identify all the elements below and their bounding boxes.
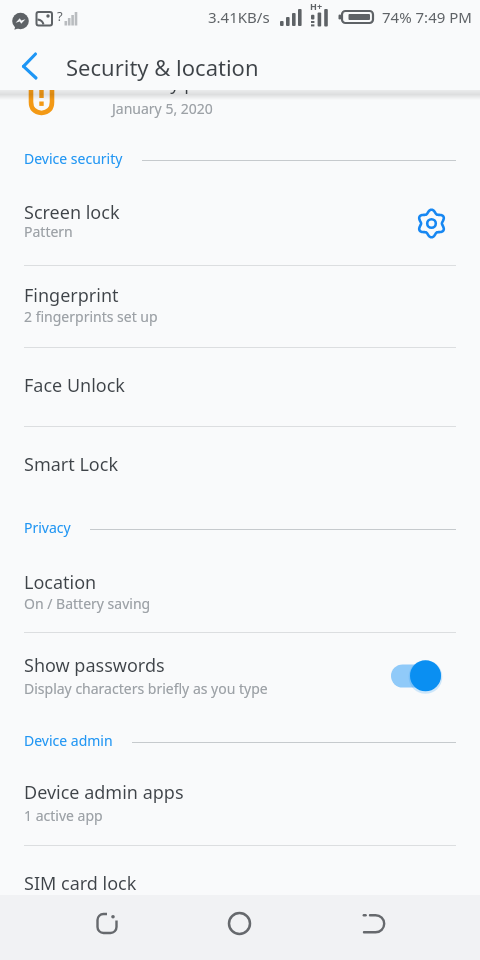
button[interactable] [0, 633, 480, 711]
staticText: Show passwords [24, 653, 165, 678]
staticText: Location [24, 570, 97, 595]
button[interactable] [0, 427, 480, 508]
button[interactable] [75, 895, 139, 959]
button[interactable] [385, 655, 447, 697]
staticText: 74% 7:49 PM [382, 7, 472, 27]
staticText: January 5, 2020 [112, 99, 213, 118]
staticText: Device admin [24, 731, 113, 750]
staticText: ? [57, 7, 63, 25]
staticText: 2 fingerprints set up [24, 307, 158, 326]
button[interactable] [0, 845, 480, 895]
staticText: Security patch level [112, 71, 275, 96]
staticText: Device security [24, 149, 123, 168]
button[interactable] [0, 266, 480, 348]
staticText: Smart Lock [24, 452, 118, 477]
button[interactable] [0, 348, 480, 427]
button[interactable] [0, 168, 480, 266]
staticText: Security & location [66, 52, 259, 82]
staticText: 1 active app [24, 806, 103, 825]
button[interactable] [341, 895, 405, 959]
staticText: Display characters briefly as you type [24, 679, 268, 698]
staticText: Fingerprint [24, 283, 119, 308]
button[interactable] [208, 895, 272, 959]
staticText: Face Unlock [24, 373, 125, 398]
button[interactable] [8, 42, 56, 90]
staticText: Screen lock [24, 200, 120, 225]
staticText: H+ [310, 0, 323, 12]
staticText: Device admin apps [24, 780, 184, 805]
staticText: Privacy [24, 518, 71, 537]
button[interactable] [402, 194, 462, 254]
staticText: SIM card lock [24, 871, 137, 896]
staticText: 3.41KB/s [208, 7, 270, 27]
staticText: On / Battery saving [24, 594, 151, 613]
button[interactable] [0, 755, 480, 845]
button[interactable] [0, 90, 480, 134]
button[interactable] [0, 545, 480, 633]
staticText: Pattern [24, 222, 73, 241]
